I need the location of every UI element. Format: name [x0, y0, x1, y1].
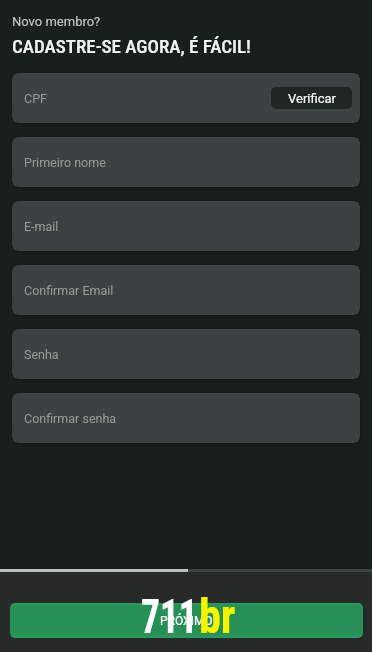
staticText: E-mail [24, 219, 59, 234]
button[interactable]: E-mail [12, 201, 360, 251]
button[interactable]: Confirmar Email [12, 265, 360, 315]
staticText: 711 [141, 588, 198, 644]
staticText: Confirmar Email [24, 283, 114, 298]
staticText: CPF [24, 91, 47, 106]
button[interactable]: Primeiro nome [12, 137, 360, 187]
staticText: Novo membro? [12, 14, 101, 29]
staticText: br [199, 588, 236, 644]
button[interactable]: Senha [12, 329, 360, 379]
staticText: CADASTRE-SE AGORA, É FÁCIL! [12, 35, 251, 57]
staticText: Senha [24, 347, 59, 362]
button[interactable]: Confirmar senha [12, 393, 360, 443]
button[interactable]: Verificar [271, 87, 352, 109]
staticText: Primeiro nome [24, 155, 106, 170]
staticText: PRÓXIMO [160, 614, 213, 628]
button[interactable]: PRÓXIMO [10, 603, 363, 638]
staticText: Verificar [288, 91, 336, 106]
button[interactable]: CPF [12, 73, 360, 123]
staticText: Confirmar senha [24, 411, 117, 426]
